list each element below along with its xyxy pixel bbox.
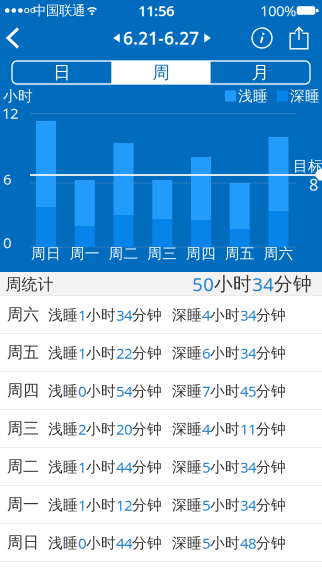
button[interactable]: 日 [12, 61, 111, 84]
staticText: 11:56 [138, 1, 174, 20]
staticText: 周日 [7, 533, 39, 552]
staticText: 小时 [86, 496, 116, 514]
staticText: 浅睡 [238, 87, 268, 105]
button[interactable]: 周 [111, 61, 210, 84]
staticText: 45 [240, 381, 256, 401]
staticText: 分钟 [256, 534, 286, 552]
staticText: 周一 [70, 244, 100, 262]
staticText: 周统计 [5, 275, 53, 294]
staticText: 周六 [263, 244, 293, 262]
staticText: 0 [78, 533, 86, 553]
staticText: 小时 [210, 458, 240, 476]
staticText: 小时 [210, 496, 240, 514]
staticText: 7 [202, 381, 210, 401]
staticText: 小时 [86, 458, 116, 476]
staticText: 深睡 [172, 496, 202, 514]
staticText: 深睡 [172, 458, 202, 476]
staticText: 深睡 [172, 344, 202, 362]
staticText: 6 [202, 343, 210, 363]
staticText: 0 [3, 233, 11, 252]
staticText: 周二 [108, 244, 138, 262]
button[interactable]: Next week [204, 33, 211, 42]
staticText: 100% [260, 1, 296, 20]
staticText: 周六 [7, 305, 39, 324]
button[interactable]: Info [252, 28, 272, 48]
staticText: 小时 [210, 306, 240, 324]
staticText: 小时 [210, 382, 240, 400]
staticText: 小时 [86, 534, 116, 552]
staticText: 小时 [86, 382, 116, 400]
staticText: 34 [240, 495, 256, 515]
staticText: 5 [202, 495, 210, 515]
staticText: 1 [78, 457, 86, 477]
staticText: 分钟 [132, 344, 162, 362]
staticText: 周四 [7, 381, 39, 400]
staticText: 分钟 [132, 306, 162, 324]
staticText: 0 [78, 381, 86, 401]
staticText: 小时 [86, 344, 116, 362]
button[interactable]: 月 [211, 61, 310, 84]
staticText: 周三 [7, 419, 39, 438]
staticText: 小时 [3, 87, 33, 105]
staticText: 浅睡 [48, 382, 78, 400]
staticText: 5 [202, 457, 210, 477]
staticText: 54 [116, 381, 132, 401]
staticText: 浅睡 [48, 420, 78, 438]
staticText: 分钟 [256, 306, 286, 324]
staticText: 34 [240, 305, 256, 325]
staticText: 20 [116, 419, 132, 439]
staticText: 深睡 [290, 87, 320, 105]
staticText: 5 [202, 533, 210, 553]
staticText: 分钟 [132, 534, 162, 552]
staticText: 周日 [31, 244, 61, 262]
staticText: 6 [3, 169, 11, 189]
staticText: 48 [240, 533, 256, 553]
staticText: 1 [78, 495, 86, 515]
staticText: 小时 [210, 534, 240, 552]
staticText: 小时 [86, 306, 116, 324]
staticText: 分钟 [274, 272, 312, 295]
staticText: 12 [116, 495, 132, 515]
staticText: 4 [202, 305, 210, 325]
staticText: 分钟 [256, 344, 286, 362]
staticText: 分钟 [256, 458, 286, 476]
staticText: 周五 [7, 343, 39, 362]
staticText: 深睡 [172, 382, 202, 400]
staticText: 22 [116, 343, 132, 363]
staticText: 分钟 [132, 382, 162, 400]
button[interactable]: Previous week [113, 33, 120, 42]
staticText: 34 [116, 305, 132, 325]
staticText: 8 [309, 174, 318, 195]
button[interactable]: Share [289, 26, 309, 49]
staticText: 分钟 [256, 496, 286, 514]
staticText: 分钟 [256, 382, 286, 400]
staticText: 11 [240, 419, 256, 439]
staticText: 浅睡 [48, 458, 78, 476]
staticText: 6.21-6.27 [123, 26, 199, 49]
staticText: 目标 [293, 157, 322, 175]
staticText: 周三 [147, 244, 177, 262]
staticText: 浅睡 [48, 306, 78, 324]
staticText: 34 [240, 343, 256, 363]
staticText: 分钟 [256, 420, 286, 438]
staticText: 小时 [210, 420, 240, 438]
staticText: 中国联通 [33, 2, 85, 19]
staticText: 2 [78, 419, 86, 439]
staticText: 深睡 [172, 420, 202, 438]
staticText: 34 [240, 457, 256, 477]
button[interactable]: Back [5, 27, 21, 49]
staticText: 日 [53, 62, 70, 83]
staticText: 周一 [7, 495, 39, 514]
staticText: 12 [2, 103, 18, 123]
staticText: 小时 [86, 420, 116, 438]
staticText: 小时 [214, 272, 252, 295]
staticText: 浅睡 [48, 496, 78, 514]
staticText: 1 [78, 343, 86, 363]
staticText: 44 [116, 533, 132, 553]
staticText: 周四 [186, 244, 216, 262]
staticText: 50 [192, 272, 214, 296]
staticText: 34 [252, 272, 274, 296]
staticText: 周 [152, 62, 169, 83]
staticText: 浅睡 [48, 344, 78, 362]
staticText: 分钟 [132, 458, 162, 476]
